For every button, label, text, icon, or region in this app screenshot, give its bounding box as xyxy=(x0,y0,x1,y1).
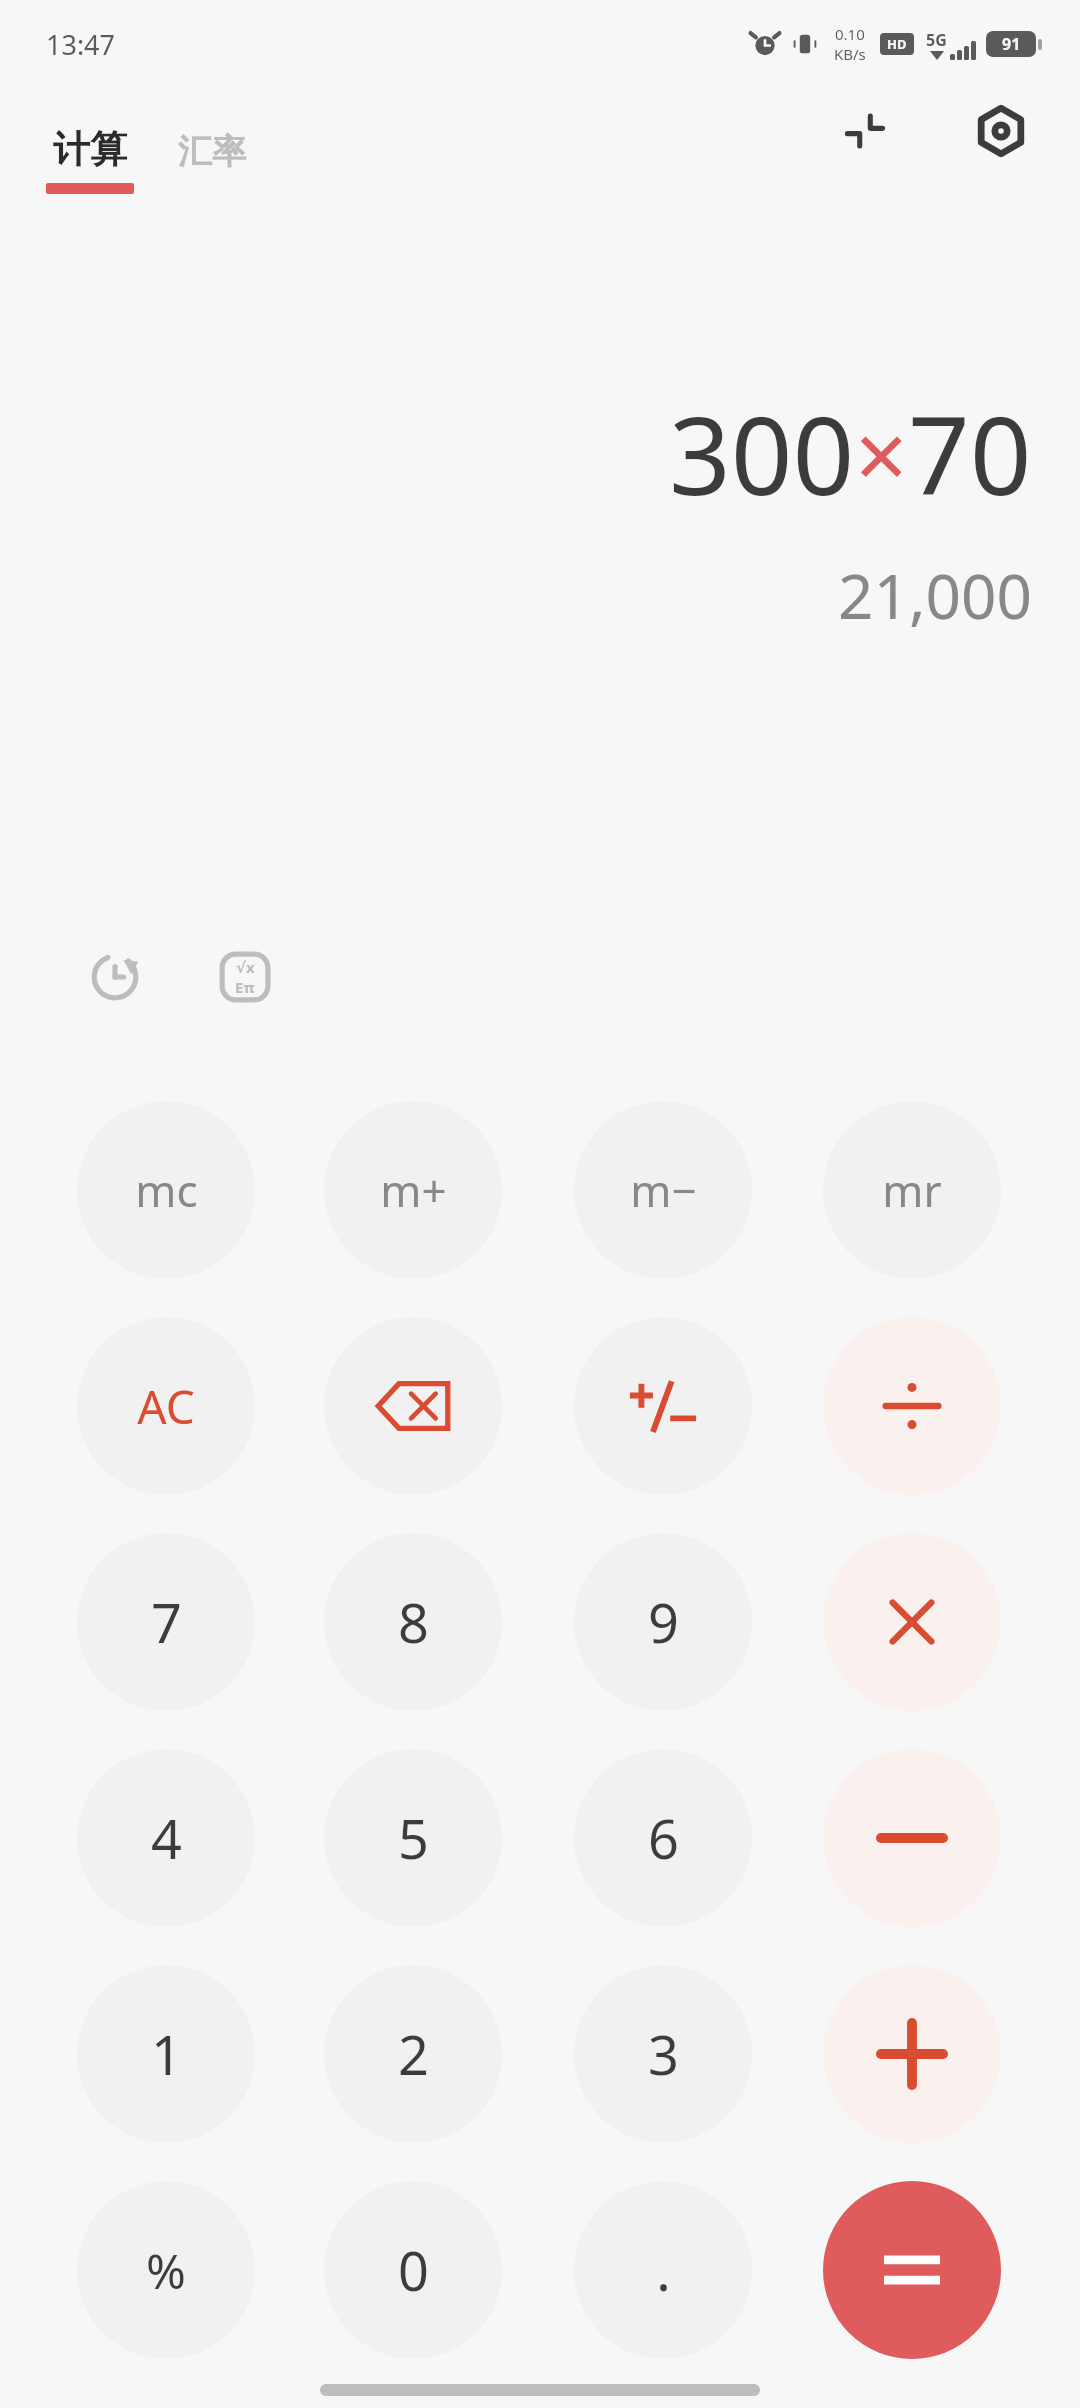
staticText: 4 xyxy=(151,1801,182,1875)
staticText: m+ xyxy=(380,1160,447,1220)
button[interactable]: . xyxy=(574,2181,752,2359)
button[interactable]: Multiply xyxy=(823,1533,1001,1711)
button[interactable]: Equals xyxy=(823,2181,1001,2359)
staticText: 1 xyxy=(151,2017,182,2091)
staticText: 70 xyxy=(908,380,1032,527)
staticText: 5G xyxy=(926,29,947,51)
staticText: 300 xyxy=(669,380,855,527)
staticText: 7 xyxy=(151,1585,182,1659)
staticText: mr xyxy=(882,1160,942,1220)
button[interactable]: 0 xyxy=(324,2181,502,2359)
staticText: m− xyxy=(630,1160,697,1220)
button[interactable]: 9 xyxy=(574,1533,752,1711)
button[interactable]: 3 xyxy=(574,1965,752,2143)
staticText: × xyxy=(855,391,908,516)
button[interactable]: Settings xyxy=(968,98,1034,164)
button[interactable]: 计算 xyxy=(46,126,134,194)
button[interactable]: 2 xyxy=(324,1965,502,2143)
staticText: . xyxy=(656,2233,671,2307)
button[interactable]: 4 xyxy=(77,1749,255,1927)
staticText: 汇率 xyxy=(178,130,246,173)
button[interactable]: % xyxy=(77,2181,255,2359)
button[interactable]: mr xyxy=(823,1101,1001,1279)
staticText: 0.10 xyxy=(835,24,865,44)
button[interactable]: History xyxy=(78,940,152,1014)
button[interactable]: AC xyxy=(77,1317,255,1495)
button[interactable]: mc xyxy=(77,1101,255,1279)
button[interactable]: Minus xyxy=(823,1749,1001,1927)
staticText: √x xyxy=(236,957,255,977)
staticText: 6 xyxy=(648,1801,679,1875)
button[interactable]: Divide xyxy=(823,1317,1001,1495)
staticText: 91 xyxy=(1002,33,1021,55)
button[interactable]: 8 xyxy=(324,1533,502,1711)
staticText: AC xyxy=(137,1375,195,1438)
staticText: Eπ xyxy=(235,977,255,997)
staticText: 9 xyxy=(648,1585,679,1659)
button[interactable]: 汇率 xyxy=(178,130,246,173)
staticText: 3 xyxy=(648,2017,679,2091)
button[interactable]: Expand xyxy=(832,98,898,164)
staticText: 5 xyxy=(398,1801,429,1875)
staticText: 13:47 xyxy=(46,26,116,63)
button[interactable]: m+ xyxy=(324,1101,502,1279)
staticText: 21,000 xyxy=(838,553,1032,637)
button[interactable]: Plus minus xyxy=(574,1317,752,1495)
button[interactable]: 7 xyxy=(77,1533,255,1711)
staticText: 2 xyxy=(398,2017,429,2091)
staticText: % xyxy=(146,2238,186,2303)
staticText: 8 xyxy=(398,1585,429,1659)
button[interactable]: Backspace xyxy=(324,1317,502,1495)
button[interactable]: 1 xyxy=(77,1965,255,2143)
staticText: KB/s xyxy=(834,44,866,64)
button[interactable]: 6 xyxy=(574,1749,752,1927)
staticText: mc xyxy=(135,1160,198,1220)
staticText: 0 xyxy=(398,2233,429,2307)
button[interactable]: Plus xyxy=(823,1965,1001,2143)
button[interactable]: Scientific xyxy=(208,940,282,1014)
staticText: 计算 xyxy=(53,126,127,173)
staticText: HD xyxy=(887,35,907,53)
button[interactable]: 5 xyxy=(324,1749,502,1927)
button[interactable]: m− xyxy=(574,1101,752,1279)
